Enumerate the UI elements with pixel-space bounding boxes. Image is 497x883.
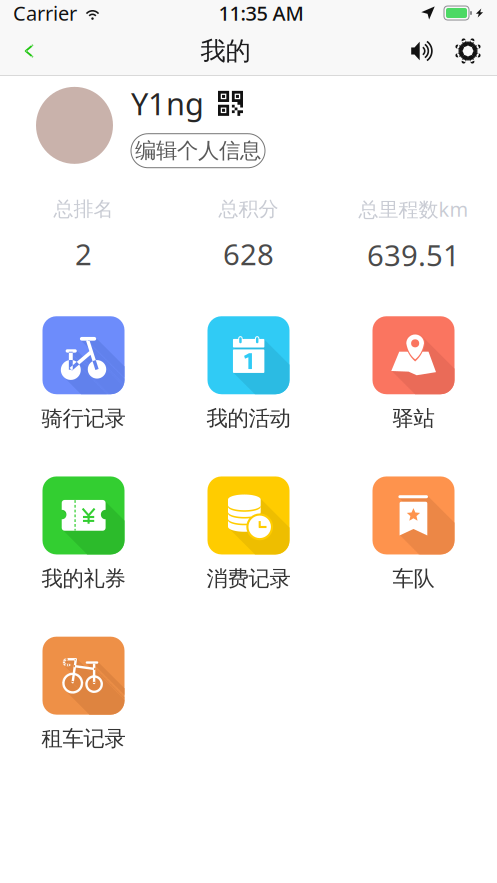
staticText: 驿站 [392,405,434,431]
button[interactable]: 租车记录 [1,637,166,752]
button[interactable]: Settings [445,28,491,74]
staticText: 11:35 AM [218,0,303,26]
button[interactable]: Back [6,28,52,74]
button[interactable]: 驿站 [331,316,496,431]
button[interactable]: 消费记录 [166,476,331,592]
staticText: 总积分 [218,197,278,221]
staticText: 租车记录 [41,726,125,752]
button[interactable]: 骑行记录 [1,316,166,431]
button[interactable]: 我的礼券 [1,476,166,592]
staticText: 639.51 [367,235,460,274]
staticText: 2 [75,234,92,273]
staticText: 骑行记录 [41,405,125,431]
staticText: 我的礼券 [41,565,125,592]
button[interactable]: Sound [399,28,445,74]
staticText: 我的活动 [206,405,290,431]
staticText: 车队 [392,565,434,592]
staticText: Carrier [13,0,77,26]
button[interactable]: My QR code [218,91,243,116]
staticText: 总里程数km [358,196,468,222]
staticText: 编辑个人信息 [135,138,261,164]
staticText: 总排名 [53,197,113,221]
staticText: 我的 [200,35,250,66]
staticText: Y1ng [131,83,204,124]
button[interactable]: 我的活动 [166,316,331,431]
staticText: 消费记录 [206,565,290,592]
staticText: 628 [223,234,274,273]
button[interactable]: 车队 [331,476,496,592]
button[interactable]: 编辑个人信息 [131,134,265,168]
